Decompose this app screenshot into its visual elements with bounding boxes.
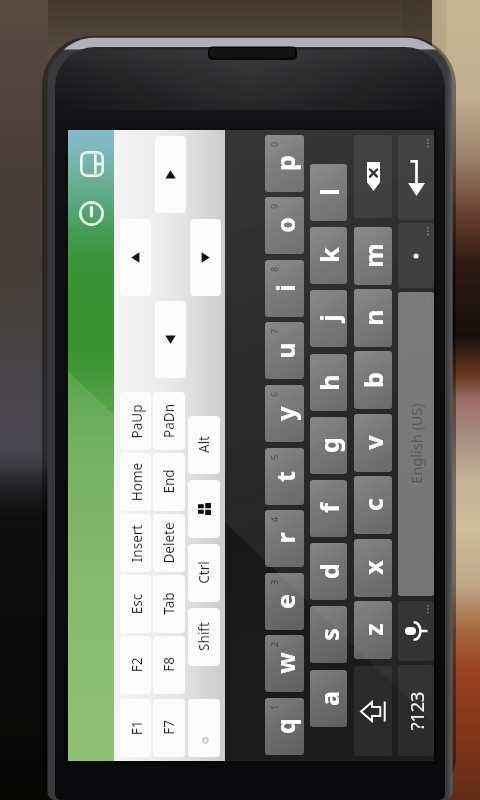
button[interactable]: F2 (120, 636, 151, 694)
button[interactable]: Power (79, 201, 104, 226)
staticText: w (268, 652, 302, 674)
button[interactable]: y (265, 385, 304, 442)
button[interactable]: z (354, 601, 392, 659)
staticText: PaUp (127, 404, 145, 438)
button[interactable]: Shift (188, 608, 220, 666)
button[interactable]: m (354, 227, 392, 285)
button[interactable] (188, 480, 220, 538)
staticText: h (312, 374, 346, 391)
button[interactable]: q (265, 698, 304, 755)
button[interactable]: F7 (153, 699, 185, 757)
staticText: y (268, 406, 302, 421)
button[interactable]: End (153, 453, 185, 511)
button[interactable]: Backspace (354, 135, 392, 218)
staticText: 9 (267, 203, 279, 209)
staticText: 3 (267, 579, 279, 585)
button[interactable]: Up (155, 136, 186, 213)
button[interactable]: Right (190, 219, 221, 296)
button[interactable]: o (265, 197, 304, 254)
staticText: Home (127, 462, 145, 501)
staticText: ?123 (404, 691, 429, 730)
button[interactable]: x (354, 539, 392, 597)
button[interactable]: c (354, 476, 392, 534)
button[interactable]: h (310, 354, 347, 411)
staticText: k (312, 247, 346, 263)
button[interactable]: p (265, 135, 304, 192)
staticText: F7 (160, 720, 178, 735)
staticText: x (356, 560, 390, 575)
button[interactable]: Alt (188, 416, 220, 474)
button[interactable]: w (265, 635, 304, 692)
button[interactable]: g (310, 417, 347, 474)
button[interactable]: u (265, 322, 304, 379)
staticText: End (160, 469, 178, 494)
staticText: English (US) (406, 403, 426, 484)
staticText: t (268, 471, 302, 482)
staticText: Tab (160, 592, 178, 615)
button[interactable]: b (354, 351, 392, 409)
button[interactable]: f (310, 480, 347, 537)
staticText: PaDn (160, 404, 178, 438)
button[interactable]: Period (398, 223, 434, 288)
button[interactable]: Esc (120, 575, 151, 633)
button[interactable]: Enter (398, 135, 434, 220)
staticText: m (356, 243, 390, 268)
staticText: c (356, 498, 390, 511)
staticText: 5 (267, 454, 279, 460)
staticText: 6 (267, 391, 279, 397)
staticText: l (312, 188, 346, 196)
staticText: g (312, 437, 346, 453)
staticText: o (268, 217, 302, 233)
button[interactable]: s (310, 606, 347, 663)
button[interactable]: l (310, 164, 347, 221)
staticText: Insert (127, 524, 145, 562)
staticText: p (268, 155, 302, 171)
button[interactable]: a (310, 670, 347, 727)
button[interactable]: Voice input (398, 601, 434, 661)
staticText: F8 (160, 657, 178, 672)
button[interactable]: d (310, 543, 347, 600)
staticText: i (268, 284, 302, 292)
staticText: 2 (267, 641, 279, 647)
button[interactable]: Symbols (398, 665, 434, 756)
staticText: a (312, 691, 346, 706)
staticText: Delete (160, 522, 178, 564)
staticText: u (268, 342, 302, 359)
button[interactable]: Insert (120, 514, 151, 572)
button[interactable]: Ctrl (188, 544, 220, 602)
button[interactable]: Tab (153, 575, 185, 633)
button[interactable]: PaUp (120, 392, 151, 450)
button[interactable]: Delete (153, 514, 185, 572)
button[interactable]: e (265, 573, 304, 630)
staticText: Esc (127, 593, 145, 614)
staticText: e (268, 594, 302, 609)
button[interactable]: Keyboard layout (80, 151, 104, 177)
staticText: F2 (127, 657, 145, 672)
staticText: 8 (267, 266, 279, 272)
button[interactable]: n (354, 289, 392, 347)
staticText: Ctrl (195, 561, 213, 584)
staticText: n (356, 309, 390, 326)
button[interactable]: v (354, 414, 392, 472)
staticText: q (268, 718, 302, 734)
button[interactable]: F8 (153, 636, 185, 694)
button[interactable]: Space (398, 292, 434, 596)
button[interactable]: Shift (354, 666, 392, 756)
staticText: 1 (267, 704, 279, 710)
button[interactable]: t (265, 448, 304, 505)
staticText: r (268, 532, 302, 544)
button[interactable]: Left (120, 219, 151, 296)
button[interactable]: Down (155, 301, 186, 378)
staticText: s (312, 628, 346, 641)
button[interactable]: i (265, 260, 304, 317)
staticText: Alt (195, 436, 213, 453)
button[interactable]: r (265, 510, 304, 567)
staticText: b (356, 372, 390, 388)
button[interactable]: F1 (120, 699, 151, 757)
button[interactable]: k (310, 227, 347, 284)
button[interactable] (188, 699, 220, 757)
button[interactable]: j (310, 290, 347, 347)
staticText: v (356, 435, 390, 450)
button[interactable]: PaDn (153, 392, 185, 450)
button[interactable]: Home (120, 453, 151, 511)
